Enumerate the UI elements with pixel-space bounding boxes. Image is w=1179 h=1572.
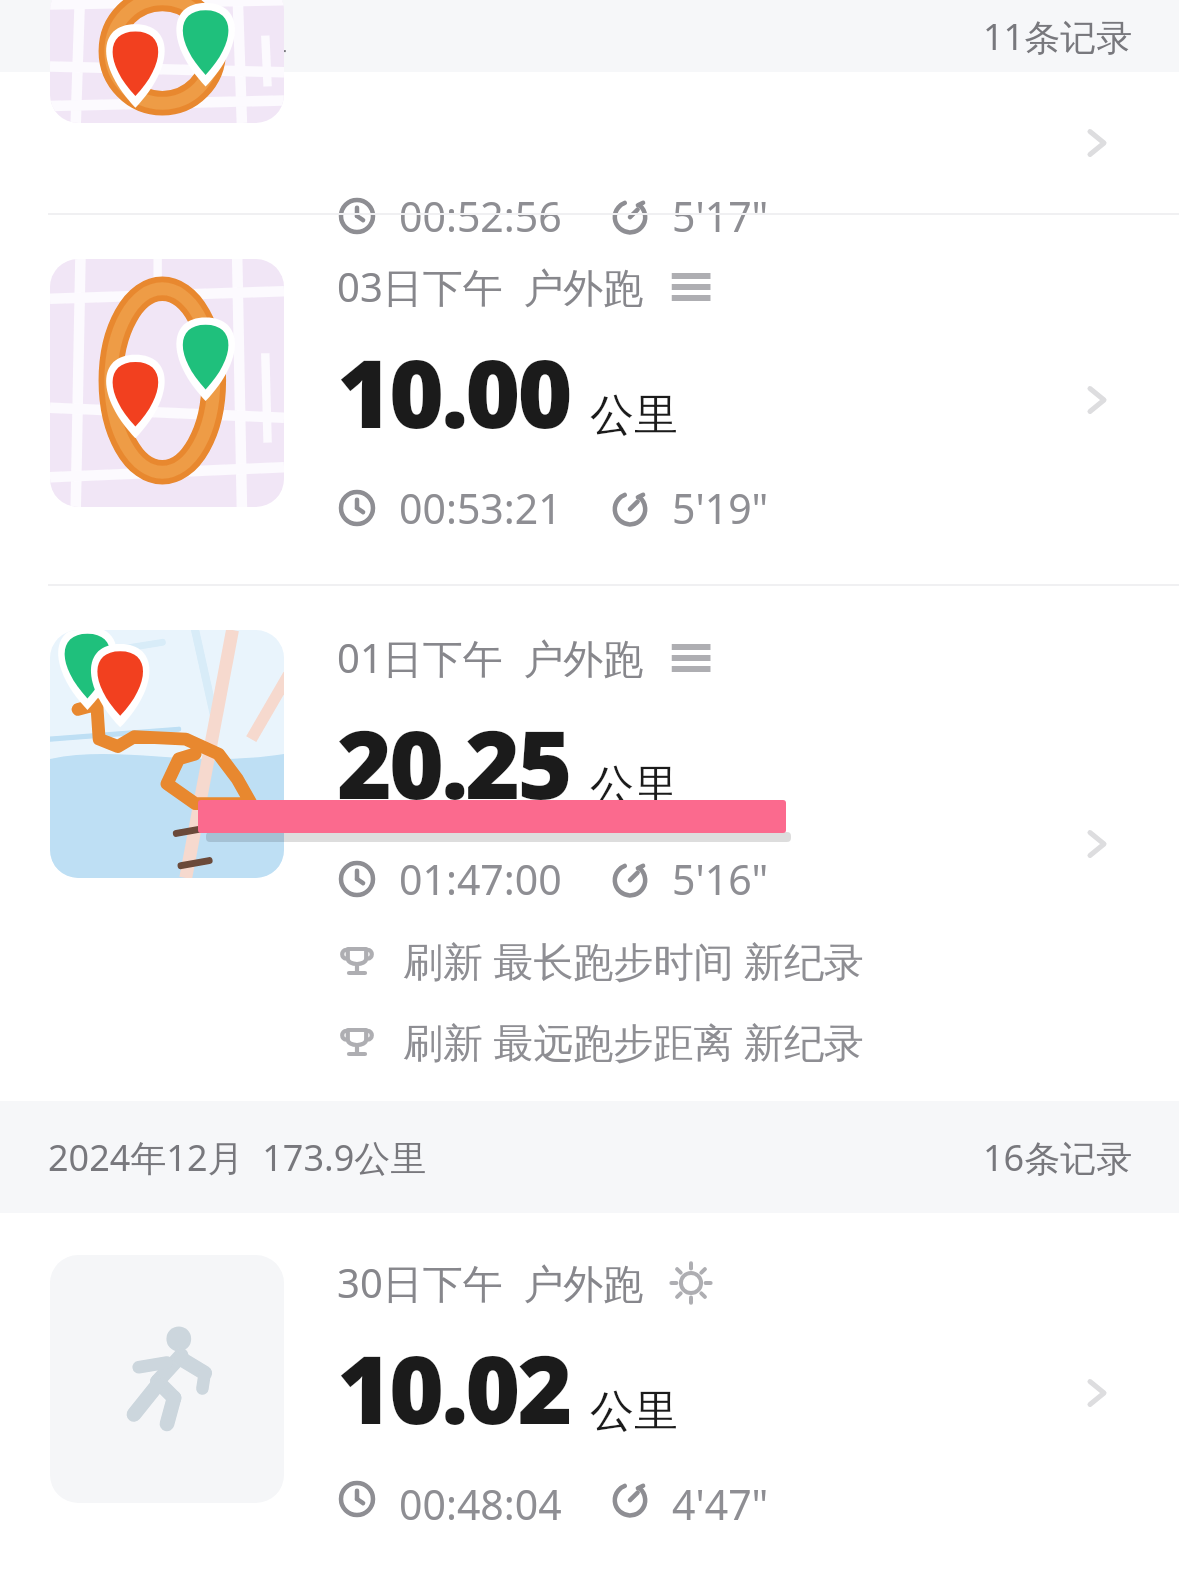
staticText: 4'47" (672, 1476, 769, 1522)
button[interactable]: 03日下午 户外跑 (0, 215, 1179, 584)
staticText: 10.02 (337, 1324, 570, 1452)
other: Sunny weather (670, 1262, 712, 1304)
staticText: 刷新 最远跑步距离 新纪录 (403, 1014, 864, 1069)
staticText: 10.00 (337, 328, 570, 456)
button[interactable]: 01日下午 户外跑 (0, 586, 1179, 1101)
staticText: 1月 112.6公里 (48, 12, 288, 61)
staticText: 00:48:04 (399, 1476, 562, 1522)
staticText: 公里 (590, 759, 678, 814)
staticText: 16条记录 (983, 1133, 1133, 1182)
staticText: 30日下午 户外跑 (337, 1255, 644, 1310)
button[interactable]: 30日下午 户外跑 (0, 1213, 1179, 1572)
staticText: 01:47:00 (399, 851, 562, 907)
staticText: 公里 (590, 388, 678, 443)
button[interactable]: View details (1075, 121, 1119, 165)
button[interactable]: View details (1075, 822, 1119, 866)
staticText: 20.25 (337, 699, 570, 827)
staticText: 刷新 最长跑步时间 新纪录 (403, 933, 864, 988)
staticText: 01日下午 户外跑 (337, 630, 644, 685)
staticText: 5'17" (672, 188, 769, 244)
staticText: 公里 (590, 1384, 678, 1439)
staticText: 03日下午 户外跑 (337, 259, 644, 314)
button[interactable]: More options (670, 641, 714, 675)
staticText: 5'19" (672, 480, 769, 536)
button[interactable]: More options (670, 270, 714, 304)
button[interactable]: View details (1075, 1371, 1119, 1415)
staticText: 11条记录 (983, 12, 1133, 61)
staticText: 2024年12月 173.9公里 (48, 1133, 427, 1182)
staticText: 5'16" (672, 851, 769, 907)
button[interactable]: 00:52:56 (0, 72, 1179, 213)
staticText: 00:52:56 (399, 188, 562, 244)
staticText: 00:53:21 (399, 480, 562, 536)
button[interactable]: View details (1075, 378, 1119, 422)
